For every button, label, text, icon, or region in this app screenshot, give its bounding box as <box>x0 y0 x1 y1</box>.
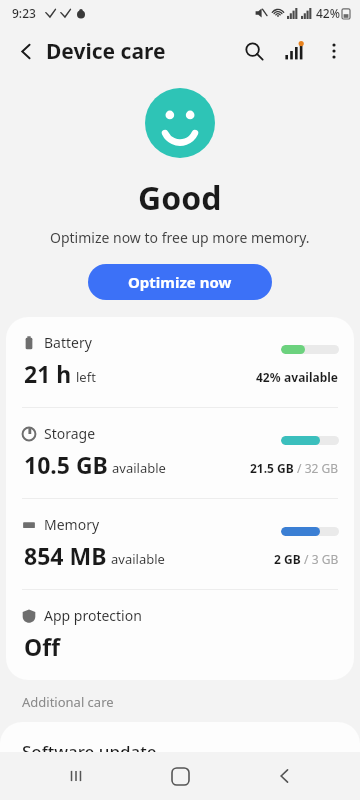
staticText: available <box>112 459 166 477</box>
button[interactable]: Battery <box>6 317 354 407</box>
button[interactable]: Back <box>256 752 314 800</box>
staticText: 42% <box>316 5 340 21</box>
staticText: Good <box>138 176 222 220</box>
staticText: 10.5 GB <box>24 449 108 480</box>
staticText: Device care <box>46 37 166 66</box>
staticText: Additional care <box>22 693 114 711</box>
button[interactable]: Back <box>8 33 44 69</box>
staticText: Optimize now to free up more memory. <box>50 228 310 247</box>
staticText: 2 GB <box>274 551 301 567</box>
button[interactable]: Storage <box>6 408 354 498</box>
button[interactable]: Search <box>234 31 274 71</box>
button[interactable]: App protection <box>6 590 354 680</box>
button[interactable]: Optimize now <box>88 264 272 300</box>
button[interactable]: Home <box>151 752 209 800</box>
staticText: available <box>281 369 339 385</box>
button[interactable]: More options <box>314 31 354 71</box>
staticText: 42% <box>256 369 281 385</box>
button[interactable]: Recent apps <box>47 752 105 800</box>
staticText: Battery <box>44 333 92 352</box>
staticText: Memory <box>44 515 100 534</box>
staticText: 854 MB <box>24 540 107 571</box>
staticText: / 3 GB <box>301 551 339 567</box>
staticText: Optimize now <box>128 272 232 292</box>
staticText: 21 h <box>24 358 72 389</box>
staticText: App protection <box>44 606 142 625</box>
staticText: 9:23 <box>12 5 36 21</box>
button[interactable]: Memory <box>6 499 354 589</box>
staticText: Off <box>24 631 60 662</box>
staticText: Software update <box>22 740 157 763</box>
button[interactable]: Usage statistics <box>274 31 314 71</box>
staticText: / 32 GB <box>294 460 339 476</box>
staticText: Storage <box>44 424 96 443</box>
button[interactable]: Software update <box>0 722 360 782</box>
staticText: left <box>76 368 96 386</box>
staticText: 21.5 GB <box>250 460 294 476</box>
staticText: available <box>111 550 165 568</box>
